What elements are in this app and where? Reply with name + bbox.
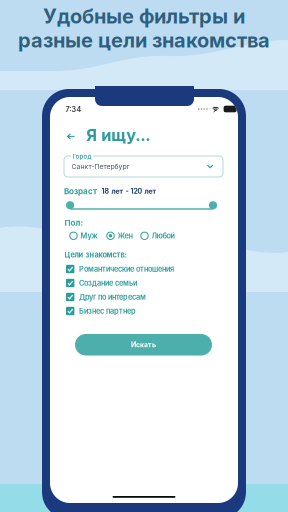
- button[interactable]: Бизнес партнер: [66, 304, 216, 318]
- button[interactable]: Друг по интересам: [66, 290, 216, 304]
- staticText: Цели знакомств:: [64, 250, 126, 259]
- staticText: 7:34: [65, 105, 81, 114]
- staticText: Создание семьи: [79, 279, 137, 287]
- staticText: Я ищу...: [86, 125, 150, 145]
- button[interactable]: Муж: [70, 231, 98, 241]
- button[interactable]: Искать: [75, 334, 212, 355]
- button[interactable]: Жен: [107, 231, 133, 241]
- staticText: Романтические отношения: [79, 265, 174, 273]
- button[interactable]: Санкт-Петербург: [64, 156, 223, 177]
- staticText: Муж: [81, 231, 98, 240]
- staticText: Бизнес партнер: [79, 307, 136, 315]
- button[interactable]: Back: [64, 129, 78, 143]
- staticText: Друг по интересам: [79, 293, 146, 301]
- staticText: Жен: [118, 231, 133, 240]
- button[interactable]: Любой: [141, 231, 175, 241]
- button[interactable]: Романтические отношения: [66, 262, 216, 276]
- staticText: Город: [73, 153, 92, 160]
- staticText: Возраст: [64, 186, 97, 196]
- staticText: разные цели знакомства: [18, 28, 270, 52]
- staticText: 18 лет - 120 лет: [101, 187, 156, 195]
- staticText: Любой: [152, 231, 175, 240]
- staticText: Искать: [131, 341, 156, 349]
- staticText: Санкт-Петербург: [71, 162, 129, 171]
- staticText: Пол:: [64, 218, 83, 228]
- staticText: Удобные фильтры и: [43, 4, 245, 28]
- button[interactable]: Создание семьи: [66, 276, 216, 290]
